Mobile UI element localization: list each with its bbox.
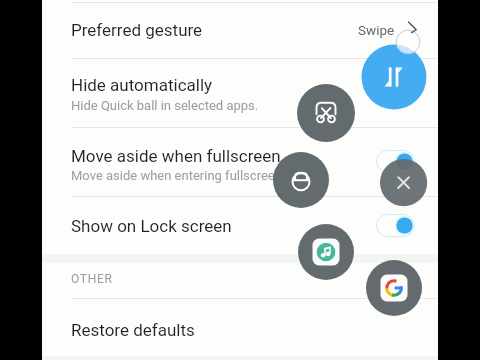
button[interactable]: Toggle bbox=[376, 150, 415, 173]
staticText: Move aside when entering fullscreen mode… bbox=[71, 168, 322, 183]
button[interactable]: Toggle bbox=[376, 214, 415, 237]
staticText: Preferred gesture bbox=[71, 20, 203, 40]
staticText: Move aside when fullscreen bbox=[71, 146, 281, 166]
button[interactable]: Move aside when fullscreen bbox=[42, 128, 438, 196]
button[interactable]: Preferred gesture bbox=[42, 3, 438, 58]
button[interactable]: Lock bbox=[273, 152, 329, 208]
button[interactable]: Screenshot bbox=[297, 84, 355, 142]
button[interactable]: Quick ball bbox=[361, 44, 427, 110]
button[interactable]: Google bbox=[366, 260, 422, 316]
staticText: Show on Lock screen bbox=[71, 216, 232, 236]
button[interactable]: Restore defaults bbox=[42, 300, 438, 356]
button[interactable]: Hide automatically bbox=[42, 59, 438, 127]
staticText: Restore defaults bbox=[71, 320, 195, 340]
button[interactable]: Show on Lock screen bbox=[42, 197, 438, 254]
staticText: Hide automatically bbox=[71, 75, 213, 95]
staticText: Hide Quick ball in selected apps. bbox=[71, 98, 259, 113]
button[interactable]: Music bbox=[298, 224, 354, 280]
button[interactable]: Quick ball handle bbox=[396, 30, 420, 54]
staticText: OTHER bbox=[71, 272, 113, 286]
button[interactable]: Close bbox=[380, 159, 427, 206]
staticText: Swipe bbox=[358, 22, 395, 38]
